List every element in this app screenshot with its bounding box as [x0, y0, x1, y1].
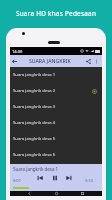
staticText: Suara jangkrik desa 1 — [13, 166, 59, 172]
staticText: SUARA JANGKRIK — [29, 58, 71, 65]
staticText: 14:00 — [12, 49, 23, 54]
staticText: Suara jangkrik desa 4 — [13, 120, 56, 126]
button[interactable]: Suara jangkrik desa 5 — [10, 131, 102, 147]
button[interactable]: Suara jangkrik desa 1 — [10, 67, 102, 83]
button[interactable]: Back — [10, 57, 19, 66]
button[interactable]: Next — [65, 174, 73, 182]
button[interactable]: Suara jangkrik desa 4 — [10, 115, 102, 131]
button[interactable]: Previous — [36, 174, 44, 182]
button[interactable]: More options — [93, 58, 100, 65]
staticText: Suara jangkrik desa 2 — [13, 88, 56, 94]
button[interactable]: Suara jangkrik desa 2 — [10, 83, 102, 99]
staticText: Suara HD khas Pedesaan — [0, 9, 112, 18]
staticText: 0:30 — [85, 178, 93, 183]
staticText: Suara jangkrik desa 6 — [13, 152, 56, 158]
button[interactable]: Pause — [50, 173, 59, 182]
button[interactable]: Share — [84, 57, 93, 66]
staticText: Suara jangkrik desa 1 — [13, 72, 56, 78]
staticText: 0:01 — [13, 178, 21, 183]
button[interactable]: Suara jangkrik desa 6 — [10, 147, 102, 163]
button[interactable]: Suara jangkrik desa 3 — [10, 99, 102, 115]
staticText: Suara jangkrik desa 5 — [13, 136, 56, 142]
staticText: Suara jangkrik desa 3 — [13, 104, 56, 110]
